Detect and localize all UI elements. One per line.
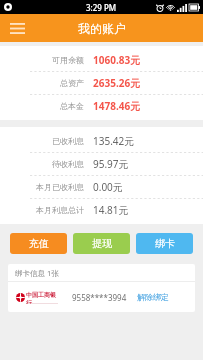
staticText: 14.81元: [93, 203, 129, 217]
staticText: 本月利息总计: [36, 205, 84, 215]
button[interactable]: 总资产: [0, 72, 203, 94]
button[interactable]: 可用余额: [0, 49, 203, 71]
staticText: 135.42元: [93, 134, 135, 148]
button[interactable]: 本月已收利息: [0, 176, 203, 198]
button[interactable]: 待收利息: [0, 153, 203, 175]
button[interactable]: 已收利息: [0, 130, 203, 152]
staticText: 2635.26元: [93, 76, 141, 90]
staticText: 提现: [92, 237, 112, 250]
button[interactable]: 绑卡: [136, 233, 193, 254]
staticText: 本月已收利息: [36, 182, 84, 192]
staticText: 解除绑定: [137, 292, 169, 302]
staticText: 我的账户: [78, 21, 126, 36]
staticText: 3:29 PM: [86, 2, 117, 13]
staticText: 1060.83元: [93, 53, 141, 67]
staticText: 充值: [29, 237, 49, 250]
button[interactable]: 提现: [73, 233, 130, 254]
staticText: 总本金: [60, 101, 84, 111]
staticText: 待收利息: [52, 159, 84, 169]
staticText: 中国工商银行: [26, 291, 61, 304]
button[interactable]: 充值: [10, 233, 67, 254]
button[interactable]: Menu: [0, 14, 34, 42]
staticText: 绑卡: [155, 237, 175, 250]
staticText: 可用余额: [52, 55, 84, 65]
staticText: 绑卡信息 1张: [15, 268, 59, 278]
button[interactable]: 中国工商银行: [8, 282, 195, 312]
staticText: 9558****3994: [72, 292, 127, 303]
button[interactable]: 本月利息总计: [0, 199, 203, 221]
staticText: 95.97元: [93, 157, 129, 171]
staticText: 已收利息: [52, 136, 84, 146]
staticText: 1478.46元: [93, 99, 141, 113]
button[interactable]: 总本金: [0, 95, 203, 117]
staticText: 总资产: [60, 78, 84, 88]
staticText: 0.00元: [93, 180, 123, 194]
button[interactable]: 解除绑定: [137, 292, 169, 302]
